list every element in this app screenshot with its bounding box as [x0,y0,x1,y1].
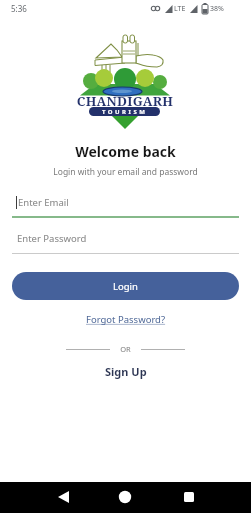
staticText: Enter Password [17,232,87,245]
staticText: CHANDIGARH [69,92,181,110]
button[interactable]: Enter Password [12,229,239,254]
button[interactable] [178,486,200,508]
button[interactable]: Login [12,272,239,300]
staticText: OR [0,344,251,354]
button[interactable]: Sign Up [105,364,147,379]
staticText: Login with your email and password [0,166,251,178]
button[interactable] [52,486,74,508]
button[interactable]: Enter Email [12,193,239,218]
staticText: 38% [210,4,224,14]
staticText: Login [113,280,138,293]
button[interactable]: Forgot Password? [86,313,166,326]
staticText: Welcome back [0,142,251,161]
staticText: 5:36 [11,3,27,14]
staticText: TOURISM [102,108,148,116]
staticText: LTE [174,4,186,14]
button[interactable] [114,486,136,508]
staticText: Enter Email [18,196,69,209]
